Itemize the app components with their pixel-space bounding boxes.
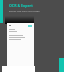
staticText: Extract Text from Any Image xyxy=(9,10,40,13)
staticText: OCR & Expert xyxy=(9,3,33,8)
